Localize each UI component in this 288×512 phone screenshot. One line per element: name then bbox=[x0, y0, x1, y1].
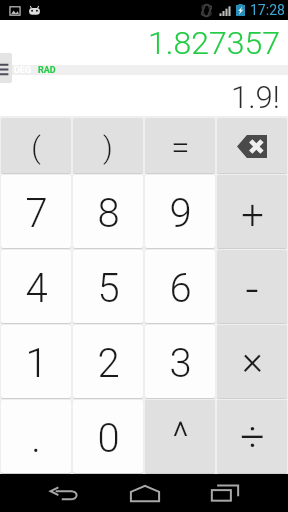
staticText: - bbox=[245, 262, 259, 316]
button[interactable]: × bbox=[217, 325, 287, 398]
button[interactable]: 0 bbox=[73, 400, 143, 473]
staticText: 2 bbox=[97, 340, 120, 387]
button[interactable]: . bbox=[1, 400, 71, 473]
button[interactable]: Open history drawer bbox=[0, 53, 12, 83]
button[interactable]: 7 bbox=[1, 175, 71, 248]
button[interactable]: DEG bbox=[13, 65, 33, 75]
staticText: 9 bbox=[169, 190, 192, 237]
button[interactable]: - bbox=[217, 250, 287, 323]
button[interactable]: ( bbox=[1, 118, 71, 173]
staticText: 1 bbox=[25, 340, 48, 387]
staticText: ( bbox=[31, 130, 41, 165]
button[interactable]: 3 bbox=[145, 325, 215, 398]
staticText: RAD bbox=[38, 65, 56, 75]
staticText: 3 bbox=[169, 340, 192, 387]
staticText: 6 bbox=[169, 265, 192, 312]
staticText: × bbox=[242, 337, 263, 384]
button[interactable]: Recent apps bbox=[201, 474, 249, 512]
staticText: ) bbox=[103, 130, 113, 165]
staticText: 8 bbox=[97, 190, 120, 237]
staticText: 5 bbox=[97, 265, 120, 312]
button[interactable]: RAD bbox=[37, 65, 57, 75]
button[interactable]: = bbox=[145, 118, 215, 173]
button[interactable]: 5 bbox=[73, 250, 143, 323]
staticText: DEG bbox=[14, 65, 32, 75]
staticText: ÷ bbox=[240, 411, 265, 461]
button[interactable]: 6 bbox=[145, 250, 215, 323]
staticText: 1.827357 bbox=[148, 24, 280, 62]
button[interactable]: Delete bbox=[217, 118, 287, 173]
button[interactable]: Home bbox=[121, 474, 169, 512]
button[interactable]: 8 bbox=[73, 175, 143, 248]
staticText: . bbox=[31, 415, 41, 462]
staticText: + bbox=[241, 192, 264, 239]
staticText: 7 bbox=[25, 190, 48, 237]
staticText: ^ bbox=[172, 414, 189, 461]
button[interactable]: + bbox=[217, 175, 287, 248]
button[interactable]: ) bbox=[73, 118, 143, 173]
button[interactable]: ^ bbox=[145, 400, 215, 473]
staticText: 1.9! bbox=[231, 79, 280, 115]
staticText: 17:28 bbox=[250, 2, 285, 18]
staticText: 4 bbox=[25, 265, 48, 312]
button[interactable]: 9 bbox=[145, 175, 215, 248]
staticText: 0 bbox=[97, 415, 120, 462]
button[interactable]: 2 bbox=[73, 325, 143, 398]
button[interactable]: ÷ bbox=[217, 400, 287, 473]
button[interactable]: Back bbox=[40, 474, 88, 512]
button[interactable]: 1 bbox=[1, 325, 71, 398]
button[interactable]: 4 bbox=[1, 250, 71, 323]
staticText: = bbox=[171, 128, 190, 167]
